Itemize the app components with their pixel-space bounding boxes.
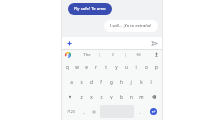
- button[interactable]: t: [101, 60, 111, 74]
- button[interactable]: d: [86, 74, 96, 89]
- staticText: v: [110, 94, 113, 100]
- staticText: Fly safe! Te amo: [74, 6, 106, 12]
- button[interactable]: Voice input: [154, 52, 159, 57]
- button[interactable]: i: [131, 60, 141, 74]
- button[interactable]: h: [116, 74, 126, 89]
- button[interactable]: o: [141, 60, 151, 74]
- button[interactable]: f: [96, 74, 106, 89]
- button[interactable]: m: [136, 89, 146, 104]
- staticText: k: [140, 79, 143, 85]
- staticText: Hi: [136, 52, 141, 58]
- staticText: u: [125, 64, 128, 70]
- staticText: b: [120, 94, 123, 100]
- button[interactable]: Hi: [126, 50, 151, 59]
- button[interactable]: s: [76, 74, 86, 89]
- staticText: z: [80, 94, 83, 100]
- staticText: p: [155, 64, 158, 70]
- button[interactable]: a: [67, 74, 76, 89]
- button[interactable]: Attach: [66, 40, 73, 47]
- button[interactable]: I: [100, 50, 125, 59]
- button[interactable]: l: [146, 74, 156, 89]
- staticText: ,: [83, 109, 85, 115]
- button[interactable]: n: [126, 89, 136, 104]
- staticText: e: [85, 64, 88, 70]
- staticText: I: [112, 52, 114, 58]
- staticText: i: [135, 64, 137, 70]
- button[interactable]: Backspace: [146, 89, 161, 104]
- button[interactable]: v: [106, 89, 116, 104]
- button[interactable]: b: [116, 89, 126, 104]
- staticText: The: [83, 52, 91, 58]
- staticText: g: [110, 79, 113, 85]
- button[interactable]: z: [77, 89, 86, 104]
- staticText: m: [139, 94, 144, 100]
- button[interactable]: I will... ¡Yo te extraño!: [104, 20, 158, 32]
- staticText: w: [75, 64, 79, 70]
- staticText: .: [139, 109, 141, 115]
- button[interactable]: u: [121, 60, 131, 74]
- button[interactable]: Fly safe! Te amo: [68, 3, 112, 15]
- staticText: o: [145, 64, 148, 70]
- staticText: d: [90, 79, 93, 85]
- button[interactable]: e: [81, 60, 91, 74]
- button[interactable]: ,: [79, 104, 89, 119]
- button[interactable]: Attach: [62, 37, 162, 50]
- staticText: a: [70, 79, 73, 85]
- button[interactable]: Shift: [63, 89, 77, 104]
- button[interactable]: Emoji: [89, 104, 99, 119]
- staticText: l: [150, 79, 152, 85]
- button[interactable]: j: [126, 74, 136, 89]
- staticText: j: [130, 79, 132, 85]
- button[interactable]: Send: [151, 40, 158, 47]
- button[interactable]: q: [63, 60, 72, 74]
- staticText: t: [105, 64, 107, 70]
- staticText: n: [130, 94, 133, 100]
- button[interactable]: The: [75, 50, 99, 59]
- staticText: c: [100, 94, 103, 100]
- button[interactable]: c: [96, 89, 106, 104]
- staticText: I will... ¡Yo te extraño!: [110, 23, 152, 29]
- button[interactable]: Google: [65, 52, 71, 58]
- button[interactable]: k: [136, 74, 146, 89]
- staticText: x: [90, 94, 93, 100]
- button[interactable]: ?123: [63, 104, 79, 119]
- button[interactable]: p: [151, 60, 161, 74]
- staticText: h: [120, 79, 123, 85]
- staticText: f: [100, 79, 102, 85]
- staticText: ?123: [67, 109, 75, 114]
- button[interactable]: w: [72, 60, 81, 74]
- button[interactable]: Enter: [150, 108, 157, 115]
- button[interactable]: y: [111, 60, 121, 74]
- button[interactable]: r: [91, 60, 101, 74]
- button[interactable]: x: [86, 89, 96, 104]
- staticText: r: [95, 64, 97, 70]
- staticText: s: [80, 79, 83, 85]
- button[interactable]: g: [106, 74, 116, 89]
- staticText: q: [66, 64, 69, 70]
- staticText: y: [115, 64, 118, 70]
